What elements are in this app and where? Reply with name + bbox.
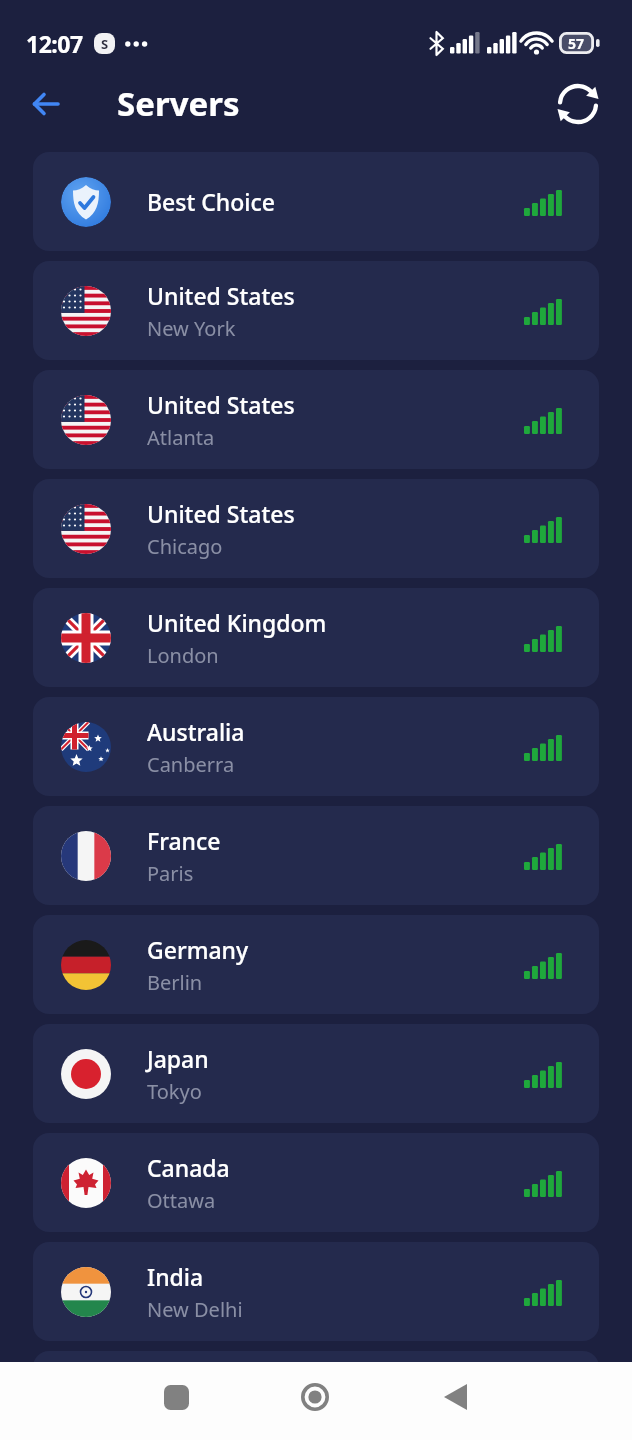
button[interactable]: United Kingdom — [33, 588, 599, 687]
staticText: Ottawa — [147, 1187, 216, 1214]
staticText: Italy — [147, 1365, 196, 1396]
staticText: 12:07 — [26, 28, 83, 59]
staticText: Servers — [117, 81, 240, 126]
staticText: Japan — [147, 1043, 209, 1074]
button[interactable]: Germany — [33, 915, 599, 1014]
button[interactable]: France — [33, 806, 599, 905]
button[interactable]: Australia — [33, 697, 599, 796]
button[interactable] — [152, 1373, 200, 1421]
staticText: Rome — [147, 1400, 202, 1427]
staticText: Berlin — [147, 969, 203, 996]
staticText: Australia — [147, 716, 245, 747]
staticText: Canberra — [147, 751, 235, 778]
button[interactable]: Canada — [33, 1133, 599, 1232]
button[interactable] — [431, 1373, 479, 1421]
staticText: S — [101, 35, 109, 53]
button[interactable]: India — [33, 1242, 599, 1341]
button[interactable] — [24, 82, 68, 126]
staticText: Best Choice — [147, 186, 275, 217]
button[interactable]: United States — [33, 370, 599, 469]
button[interactable]: United States — [33, 261, 599, 360]
staticText: India — [147, 1261, 204, 1292]
staticText: United States — [147, 498, 295, 529]
staticText: 57 — [568, 34, 585, 53]
button[interactable] — [552, 78, 604, 130]
staticText: Paris — [147, 860, 194, 887]
staticText: Canada — [147, 1152, 230, 1183]
button[interactable]: Best Choice — [33, 152, 599, 251]
button[interactable]: Italy — [33, 1351, 599, 1440]
button[interactable] — [291, 1373, 339, 1421]
staticText: New Delhi — [147, 1296, 243, 1323]
button[interactable]: United States — [33, 479, 599, 578]
staticText: Atlanta — [147, 424, 215, 451]
staticText: London — [147, 642, 219, 669]
staticText: United Kingdom — [147, 607, 327, 638]
staticText: United States — [147, 280, 295, 311]
staticText: Germany — [147, 934, 249, 965]
staticText: France — [147, 825, 221, 856]
staticText: New York — [147, 315, 236, 342]
staticText: United States — [147, 389, 295, 420]
staticText: Tokyo — [147, 1078, 202, 1105]
button[interactable]: Japan — [33, 1024, 599, 1123]
staticText: Chicago — [147, 533, 223, 560]
